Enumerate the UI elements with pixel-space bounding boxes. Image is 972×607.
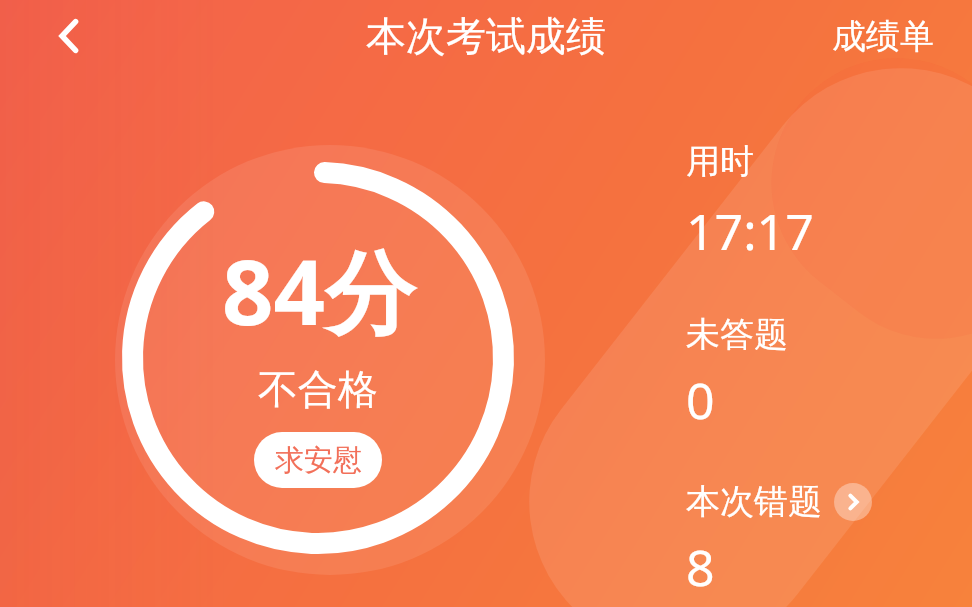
staticText: 本次错题	[686, 480, 822, 523]
staticText: 未答题	[686, 313, 788, 356]
staticText: 8	[686, 533, 715, 601]
button[interactable]: 本次错题	[686, 480, 880, 523]
button[interactable]: 成绩单	[826, 7, 940, 66]
staticText: 成绩单	[832, 15, 934, 58]
staticText: 17:17	[686, 197, 814, 265]
staticText: 用时	[686, 140, 754, 183]
staticText: 求安慰	[275, 442, 362, 479]
staticText: 本次考试成绩	[366, 11, 606, 61]
button[interactable]: Back	[34, 0, 106, 72]
staticText: 不合格	[258, 364, 378, 414]
button[interactable]: 求安慰	[254, 432, 382, 488]
staticText: 84分	[222, 229, 415, 352]
staticText: 0	[686, 366, 715, 434]
